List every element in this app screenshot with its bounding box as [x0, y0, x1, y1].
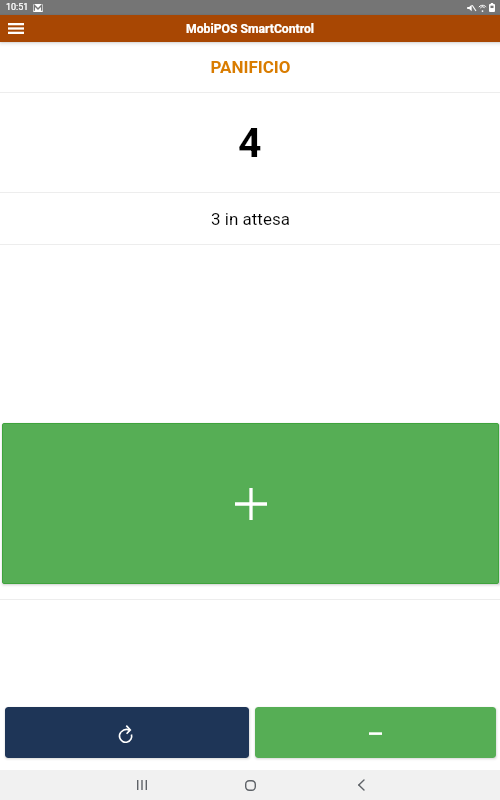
- button[interactable]: Refresh: [5, 707, 249, 758]
- button[interactable]: Add order: [2, 423, 499, 584]
- button[interactable]: Recent apps: [119, 770, 164, 800]
- button[interactable]: PANIFICIO: [0, 42, 500, 92]
- staticText: 3 in attesa: [211, 209, 290, 229]
- button[interactable]: Open navigation menu: [0, 15, 31, 42]
- staticText: 10:51: [6, 2, 29, 13]
- button[interactable]: Home: [228, 770, 273, 800]
- button[interactable]: Back: [338, 770, 383, 800]
- button[interactable]: 3 in attesa: [0, 193, 500, 244]
- staticText: PANIFICIO: [210, 57, 291, 77]
- button[interactable]: Remove order: [255, 707, 496, 758]
- button[interactable]: 4: [0, 93, 500, 192]
- staticText: 4: [238, 119, 262, 167]
- staticText: MobiPOS SmartControl: [186, 22, 315, 36]
